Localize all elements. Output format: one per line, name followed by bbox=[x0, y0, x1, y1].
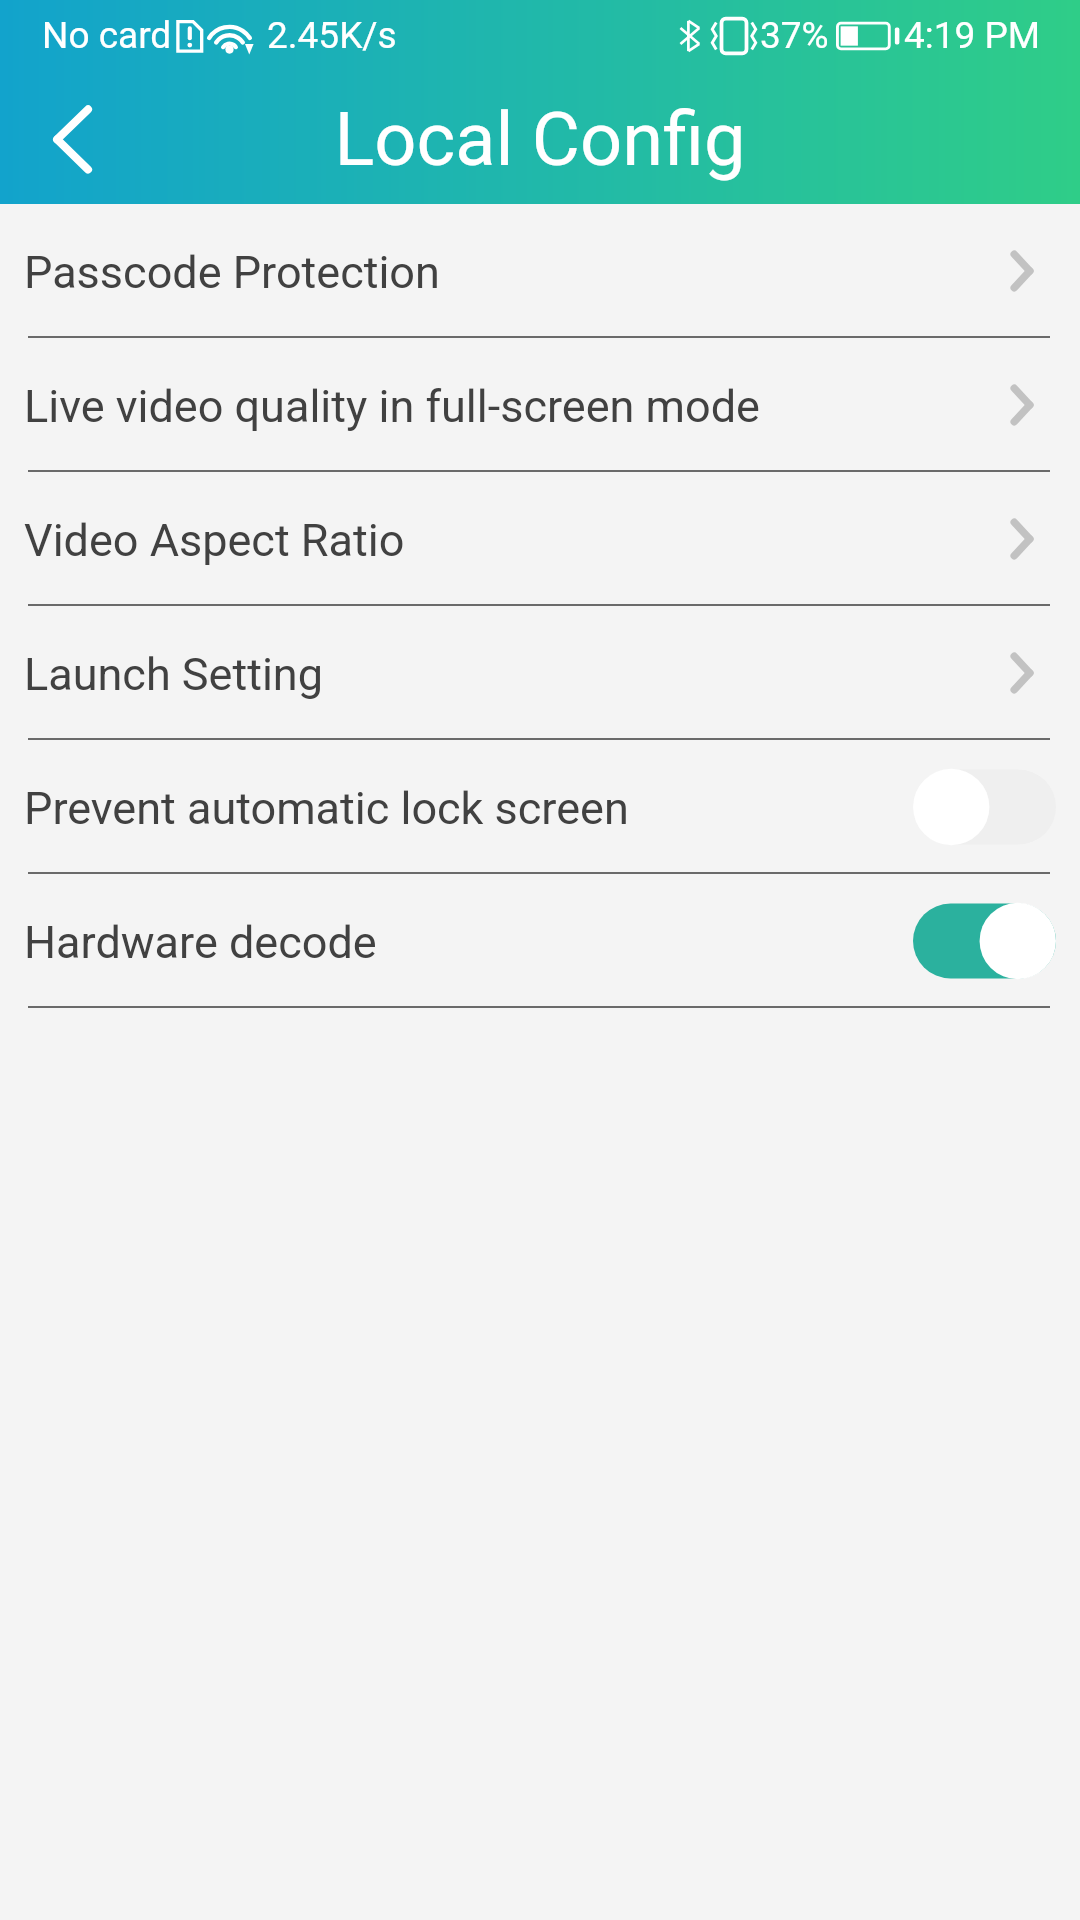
staticText: 2.45K/s bbox=[267, 14, 397, 57]
staticText: 4:19 PM bbox=[904, 14, 1041, 57]
button[interactable]: Hardware decode bbox=[0, 874, 1080, 1008]
button[interactable]: Live video quality in full-screen mode bbox=[0, 338, 1080, 472]
staticText: Hardware decode bbox=[24, 916, 377, 969]
button[interactable]: Launch Setting bbox=[0, 606, 1080, 740]
button[interactable]: Prevent automatic lock screen bbox=[0, 740, 1080, 874]
staticText: Video Aspect Ratio bbox=[24, 514, 405, 567]
button[interactable]: Prevent automatic lock screen, Off bbox=[913, 768, 1056, 846]
staticText: Prevent automatic lock screen bbox=[24, 782, 629, 835]
button[interactable]: Video Aspect Ratio bbox=[0, 472, 1080, 606]
staticText: Passcode Protection bbox=[24, 246, 440, 299]
staticText: Live video quality in full-screen mode bbox=[24, 380, 760, 433]
button[interactable]: Hardware decode, On bbox=[913, 902, 1056, 980]
staticText: 37% bbox=[760, 14, 829, 57]
button[interactable]: Back bbox=[24, 96, 110, 182]
staticText: Launch Setting bbox=[24, 648, 323, 701]
staticText: No card bbox=[42, 14, 172, 57]
button[interactable]: Passcode Protection bbox=[0, 204, 1080, 338]
staticText: Local Config bbox=[0, 96, 1080, 183]
